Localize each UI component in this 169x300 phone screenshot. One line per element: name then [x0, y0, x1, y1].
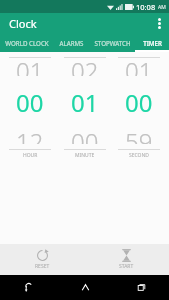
- staticText: 02: [71, 54, 99, 76]
- button[interactable]: START: [84, 244, 169, 275]
- staticText: 01: [16, 54, 44, 76]
- button[interactable]: 02: [61, 57, 109, 159]
- staticText: 00: [125, 86, 153, 119]
- staticText: Clock: [9, 16, 37, 31]
- staticText: 00: [16, 86, 44, 119]
- staticText: SECOND: [129, 152, 149, 159]
- button[interactable]: More options: [149, 13, 169, 33]
- button[interactable]: 01: [115, 57, 163, 159]
- staticText: AM: [158, 4, 166, 11]
- button[interactable]: Recent apps: [113, 275, 169, 300]
- button[interactable]: 01: [6, 57, 54, 159]
- staticText: WORLD CLOCK: [5, 39, 49, 47]
- staticText: HOUR: [23, 152, 38, 159]
- staticText: MINUTE: [75, 152, 95, 159]
- staticText: ALARMS: [59, 39, 84, 47]
- button[interactable]: Back: [0, 275, 57, 300]
- staticText: 12: [16, 125, 44, 144]
- staticText: 00: [71, 125, 99, 144]
- button[interactable]: TIMER: [135, 33, 169, 52]
- staticText: 10:08: [136, 2, 156, 12]
- button[interactable]: Home: [57, 275, 113, 300]
- staticText: STOPWATCH: [94, 39, 131, 47]
- button[interactable]: WORLD CLOCK: [0, 33, 53, 52]
- button[interactable]: STOPWATCH: [89, 33, 135, 52]
- staticText: START: [119, 263, 134, 270]
- staticText: 59: [125, 125, 153, 144]
- staticText: RESET: [35, 263, 50, 270]
- staticText: TIMER: [143, 39, 162, 47]
- staticText: 01: [71, 86, 99, 119]
- button[interactable]: ALARMS: [53, 33, 89, 52]
- button[interactable]: RESET: [0, 244, 84, 275]
- staticText: 01: [125, 54, 153, 76]
